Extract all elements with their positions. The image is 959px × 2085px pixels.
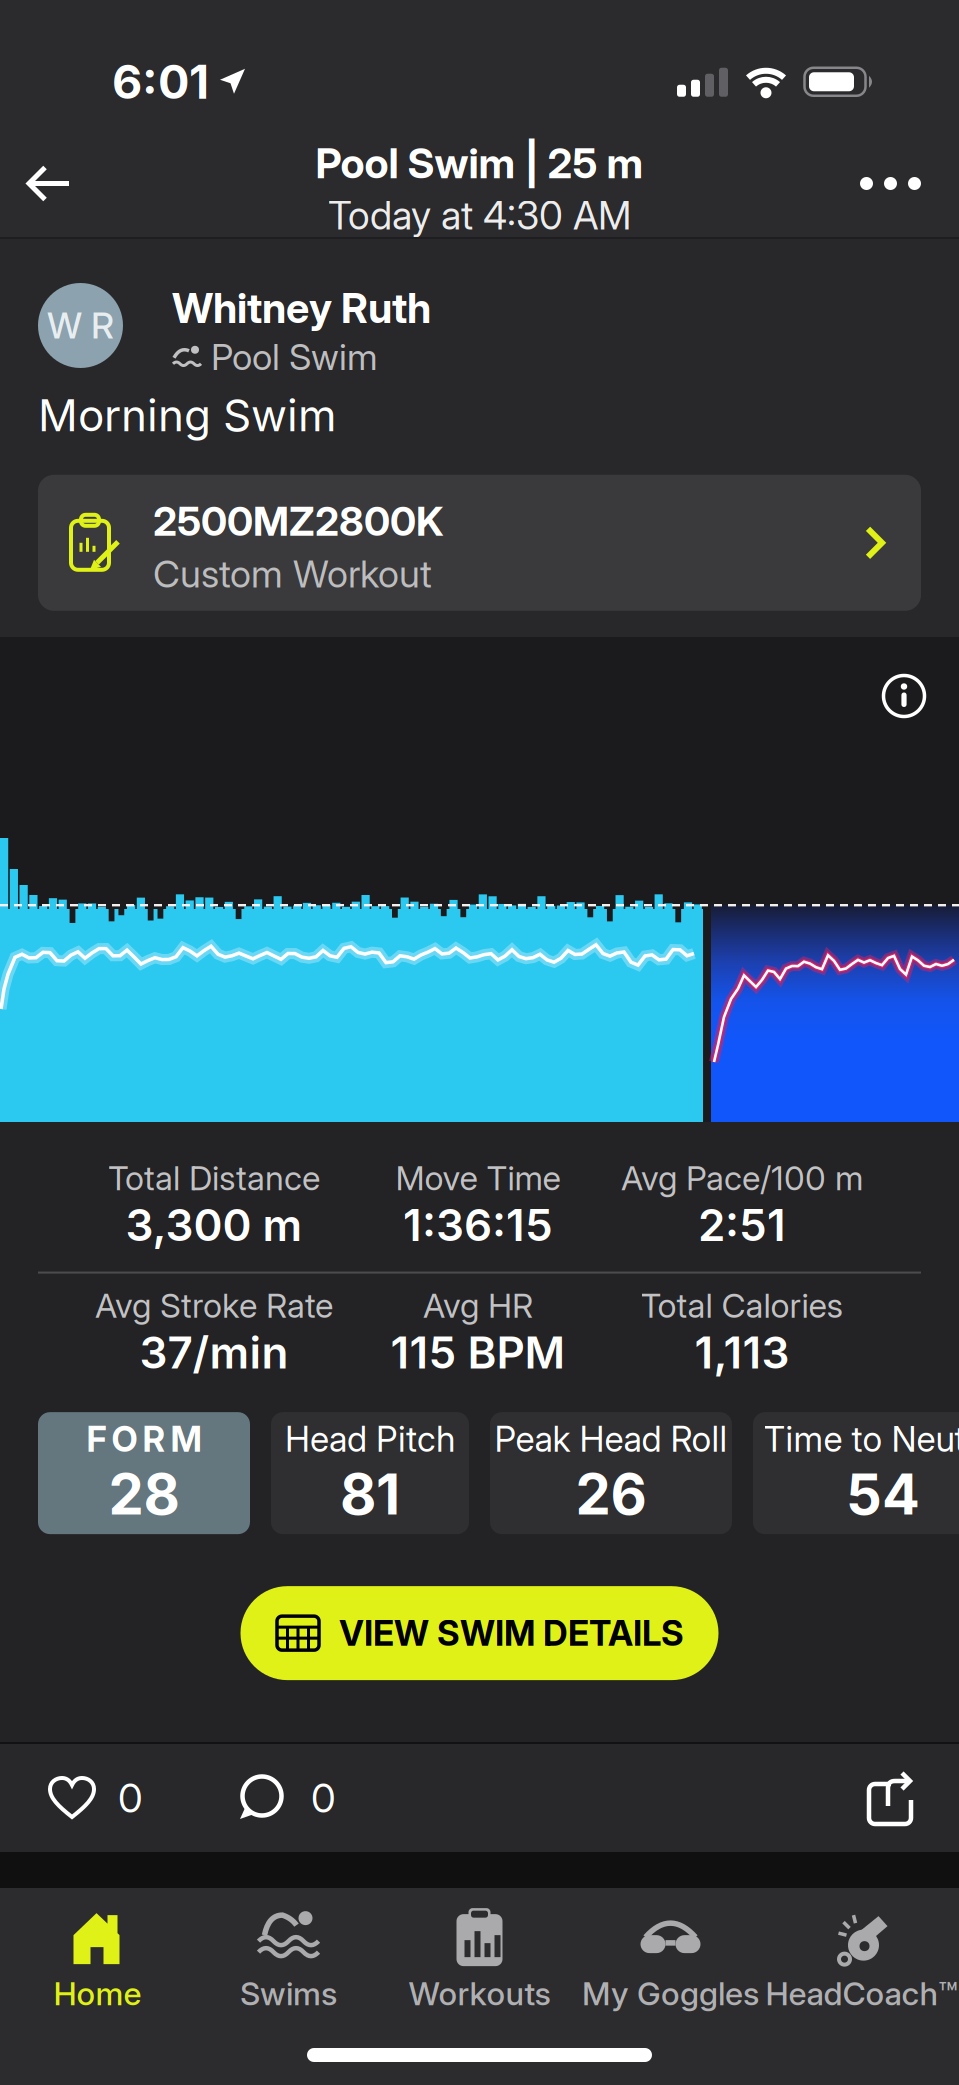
staticText: Avg HR [423, 1286, 533, 1326]
staticText: My Goggles [582, 1974, 759, 2013]
staticText: Whitney Ruth [172, 283, 431, 333]
staticText: Time to Neutral [763, 1418, 959, 1460]
staticText: Custom Workout [153, 551, 432, 597]
staticText: 54 [846, 1460, 920, 1528]
staticText: Move Time [395, 1158, 560, 1198]
staticText: 2:51 [698, 1198, 786, 1251]
staticText: Today at 4:30 AM [328, 192, 631, 239]
staticText: 1,113 [694, 1326, 789, 1379]
staticText: 1:36:15 [403, 1198, 553, 1251]
staticText: 6:01 [112, 53, 209, 110]
staticText: Pool Swim [211, 335, 378, 379]
staticText: W R [47, 304, 114, 347]
button[interactable]: HeadCoach™ [766, 1896, 957, 2024]
button[interactable]: Time to Neutral [753, 1412, 959, 1534]
staticText: 81 [340, 1460, 400, 1528]
button[interactable]: Comment [143, 1774, 336, 1822]
staticText: VIEW SWIM DETAILS [339, 1612, 684, 1654]
button[interactable]: VIEW SWIM DETAILS [240, 1586, 718, 1680]
button[interactable]: Like [48, 1774, 143, 1822]
staticText: Head Pitch [285, 1418, 455, 1460]
button[interactable]: Swims [193, 1896, 384, 2024]
staticText: Morning Swim [38, 389, 337, 442]
staticText: 0 [118, 1774, 143, 1822]
staticText: Workouts [408, 1974, 550, 2013]
staticText: 3,300 m [125, 1198, 302, 1251]
button[interactable]: Head Pitch [271, 1412, 469, 1534]
button[interactable]: Workouts [384, 1896, 575, 2024]
staticText: F O R M [86, 1418, 201, 1460]
staticText: Avg Stroke Rate [95, 1286, 333, 1326]
staticText: Total Calories [640, 1286, 843, 1326]
staticText: Home [53, 1974, 141, 2013]
staticText: 37/min [139, 1326, 288, 1379]
button[interactable]: Back [0, 164, 71, 202]
staticText: Pool Swim | 25 m [315, 138, 643, 188]
staticText: Swims [240, 1974, 337, 2013]
button[interactable]: 2500MZ2800K [38, 475, 921, 611]
staticText: Avg Pace/100 m [621, 1158, 863, 1198]
staticText: 28 [108, 1460, 179, 1528]
staticText: Total Distance [108, 1158, 320, 1198]
button[interactable]: Share [861, 1768, 917, 1828]
staticText: 0 [311, 1774, 336, 1822]
button[interactable]: Info [881, 673, 927, 719]
button[interactable]: My Goggles [575, 1896, 766, 2024]
button[interactable]: More [860, 177, 959, 190]
staticText: HeadCoach™ [765, 1974, 957, 2013]
staticText: 115 BPM [390, 1326, 565, 1379]
button[interactable]: Home [2, 1896, 193, 2024]
button[interactable]: F O R M [38, 1412, 250, 1534]
staticText: 26 [575, 1460, 646, 1528]
staticText: 2500MZ2800K [153, 497, 444, 545]
button[interactable]: Peak Head Roll [490, 1412, 732, 1534]
staticText: Peak Head Roll [494, 1418, 727, 1460]
